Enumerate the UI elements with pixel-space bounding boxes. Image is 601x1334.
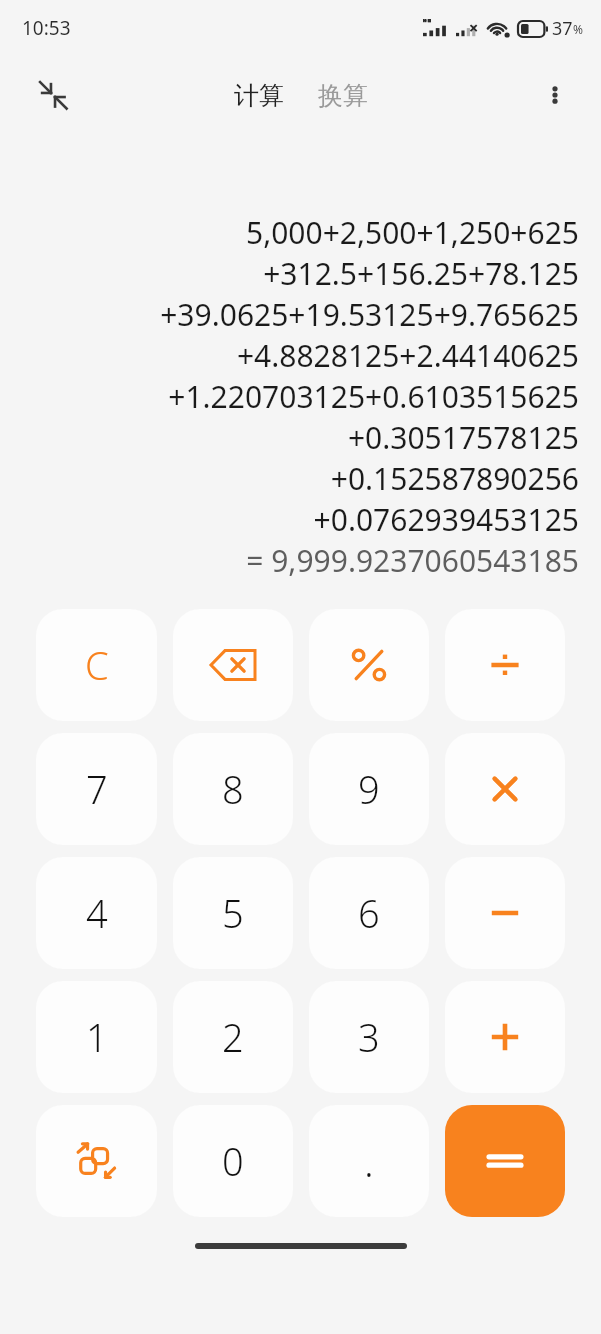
button[interactable]: Backspace: [173, 609, 293, 721]
button[interactable]: 0: [173, 1105, 293, 1217]
staticText: 9: [358, 763, 380, 815]
button[interactable]: 3: [309, 981, 429, 1093]
staticText: 37: [552, 16, 573, 41]
staticText: +0.30517578125: [22, 417, 579, 458]
button[interactable]: More options: [533, 73, 577, 117]
staticText: 5,000+2,500+1,250+625: [22, 212, 579, 253]
staticText: +4.8828125+2.44140625: [22, 335, 579, 376]
button[interactable]: Multiply: [445, 733, 565, 845]
staticText: 换算: [318, 80, 368, 111]
staticText: 7: [86, 763, 108, 815]
staticText: 计算: [234, 80, 284, 111]
button[interactable]: 7: [36, 733, 157, 845]
button[interactable]: 9: [309, 733, 429, 845]
button[interactable]: Collapse: [30, 72, 76, 118]
staticText: .: [364, 1134, 374, 1188]
staticText: 0: [222, 1135, 244, 1187]
staticText: 8: [222, 763, 244, 815]
button[interactable]: 2: [173, 981, 293, 1093]
staticText: 6: [358, 887, 380, 939]
staticText: 3: [358, 1011, 380, 1063]
staticText: = 9,999.9237060543185: [22, 540, 579, 581]
staticText: 4: [86, 887, 108, 939]
button[interactable]: C: [36, 609, 157, 721]
staticText: C: [85, 639, 109, 691]
button[interactable]: 4: [36, 857, 157, 969]
staticText: +1.220703125+0.6103515625: [22, 376, 579, 417]
staticText: 1: [86, 1011, 108, 1063]
button[interactable]: Plus: [445, 981, 565, 1093]
button[interactable]: 8: [173, 733, 293, 845]
button[interactable]: 换算: [308, 74, 378, 117]
button[interactable]: Equals: [445, 1105, 565, 1217]
staticText: 2: [222, 1011, 244, 1063]
button[interactable]: 6: [309, 857, 429, 969]
staticText: +312.5+156.25+78.125: [22, 253, 579, 294]
button[interactable]: Percent: [309, 609, 429, 721]
button[interactable]: Scientific: [36, 1105, 157, 1217]
staticText: +0.152587890256: [22, 458, 579, 499]
staticText: 5: [222, 887, 244, 939]
button[interactable]: 5: [173, 857, 293, 969]
button[interactable]: Minus: [445, 857, 565, 969]
button[interactable]: Divide: [445, 609, 565, 721]
button[interactable]: 计算: [224, 74, 294, 117]
staticText: 10:53: [22, 15, 71, 41]
staticText: %: [573, 21, 583, 37]
button[interactable]: .: [309, 1105, 429, 1217]
staticText: +39.0625+19.53125+9.765625: [22, 294, 579, 335]
button[interactable]: 1: [36, 981, 157, 1093]
staticText: +0.0762939453125: [22, 499, 579, 540]
